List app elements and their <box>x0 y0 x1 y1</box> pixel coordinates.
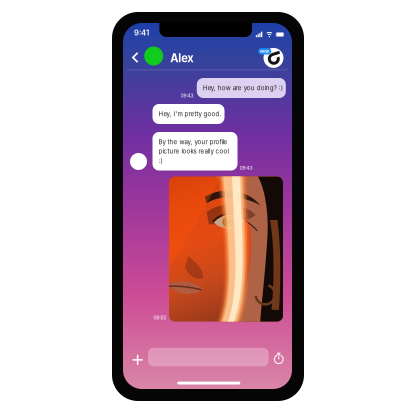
button[interactable]: Message field <box>148 348 269 366</box>
staticText: 9:41 <box>134 28 149 37</box>
staticText: Alex <box>170 51 193 65</box>
staticText: Hey, I'm pretty good. <box>158 110 221 118</box>
button[interactable]: Add attachment <box>127 349 148 370</box>
staticText: NEW <box>260 49 269 54</box>
button[interactable]: Open profile <box>252 44 280 67</box>
staticText: Hey, how are you doing? :) <box>203 84 283 92</box>
staticText: :) <box>158 157 162 164</box>
button[interactable]: Back <box>129 49 142 66</box>
button[interactable]: Disappearing messages <box>269 348 288 368</box>
staticText: picture looks really cool <box>158 147 228 155</box>
staticText: 09:43 <box>239 165 252 171</box>
staticText: 09:50 <box>153 315 166 321</box>
staticText: By the way, your profile <box>158 138 227 146</box>
staticText: 09:43 <box>181 93 194 99</box>
